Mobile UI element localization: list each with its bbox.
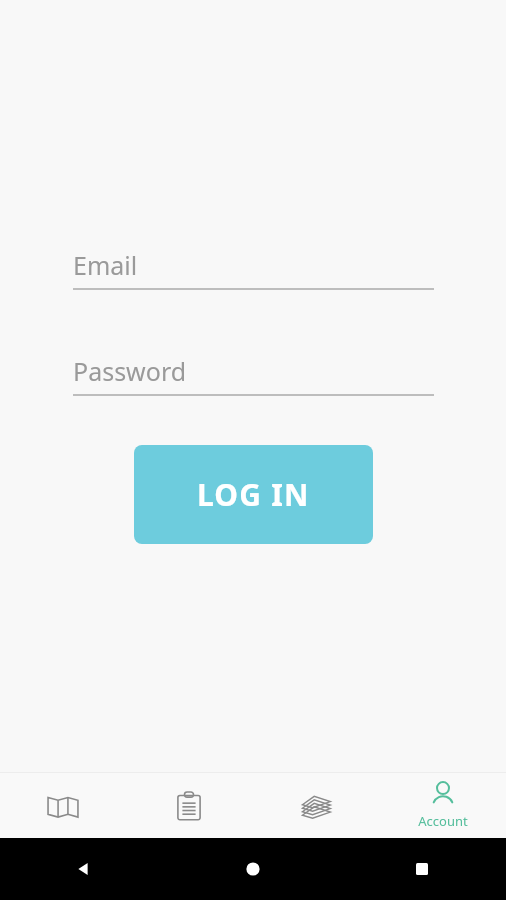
button[interactable]: LOG IN: [134, 445, 373, 544]
staticText: Account: [418, 812, 468, 830]
staticText: Password: [73, 354, 187, 388]
button[interactable]: Back: [0, 838, 168, 900]
staticText: LOG IN: [197, 474, 310, 515]
button[interactable]: Tasks: [126, 772, 252, 838]
button[interactable]: Email: [0, 248, 506, 290]
button[interactable]: Payments: [252, 772, 379, 838]
button[interactable]: Account: [379, 772, 506, 838]
button[interactable]: Password: [0, 354, 506, 396]
button[interactable]: Recents: [337, 838, 506, 900]
button[interactable]: Home: [168, 838, 337, 900]
staticText: Email: [73, 248, 138, 282]
button[interactable]: Routes: [0, 772, 126, 838]
